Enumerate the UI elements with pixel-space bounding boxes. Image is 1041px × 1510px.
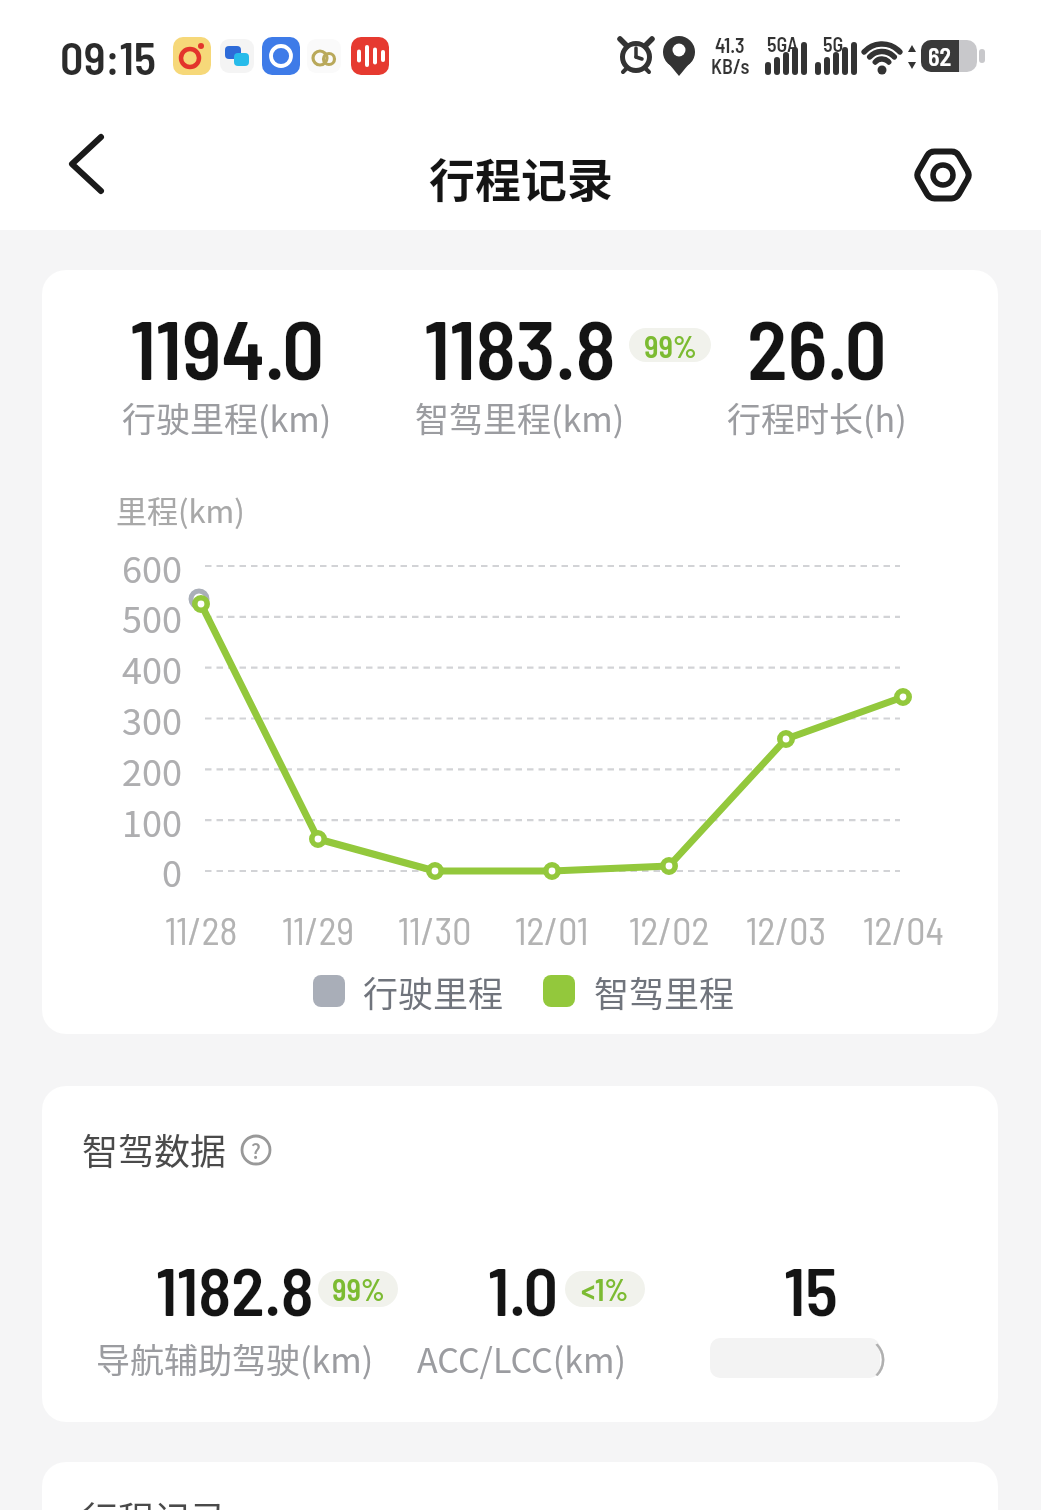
staticText: 15	[784, 1248, 838, 1328]
staticText: 行程记录	[429, 144, 613, 211]
staticText: 09:15	[60, 29, 156, 84]
staticText: 12/04	[863, 907, 944, 953]
staticText: 智驾里程(km)	[415, 393, 625, 442]
staticText: 12/02	[629, 907, 710, 953]
button[interactable]	[903, 135, 983, 215]
staticText: 41.3	[715, 33, 745, 57]
staticText: 导航辅助驾驶(km)	[96, 1334, 374, 1383]
staticText: KB/s	[711, 54, 750, 78]
staticText: 12/03	[746, 907, 827, 953]
staticText: 里程(km)	[116, 487, 245, 531]
staticText: 26.0	[747, 297, 887, 397]
staticText: 1.0	[488, 1248, 559, 1328]
staticText: 300	[122, 693, 182, 743]
staticText: 11/28	[165, 907, 238, 953]
staticText: 500	[122, 591, 182, 641]
staticText: 1194.0	[130, 297, 325, 397]
staticText: 0	[162, 845, 182, 895]
staticText: ）	[874, 1334, 908, 1383]
staticText: 12/01	[515, 907, 589, 953]
staticText: 62	[928, 42, 952, 70]
button[interactable]	[45, 120, 125, 210]
staticText: 200	[122, 744, 182, 794]
staticText: 11/29	[282, 907, 354, 953]
staticText: 99%	[644, 328, 697, 362]
staticText: 智驾里程	[594, 966, 735, 1016]
staticText: 5GA	[767, 32, 799, 54]
staticText: ACC/LCC(km)	[417, 1334, 626, 1383]
button[interactable]: ?	[240, 1134, 272, 1166]
staticText: <1%	[581, 1271, 629, 1307]
staticText: 1183.8	[424, 297, 616, 397]
staticText: 400	[122, 642, 182, 692]
staticText: 行程时长(h)	[727, 393, 907, 442]
staticText: 11/30	[398, 907, 472, 953]
staticText: 99%	[332, 1271, 385, 1307]
staticText: ?	[251, 1136, 261, 1165]
staticText: 行驶里程(km)	[122, 393, 332, 442]
staticText: 5G	[823, 32, 844, 54]
staticText: 100	[122, 795, 182, 845]
staticText: 智驾数据	[82, 1123, 227, 1175]
staticText: 600	[122, 541, 182, 591]
staticText: 1182.8	[156, 1248, 314, 1328]
staticText: 行驶里程	[363, 966, 504, 1016]
staticText: 行程记录	[82, 1491, 227, 1510]
